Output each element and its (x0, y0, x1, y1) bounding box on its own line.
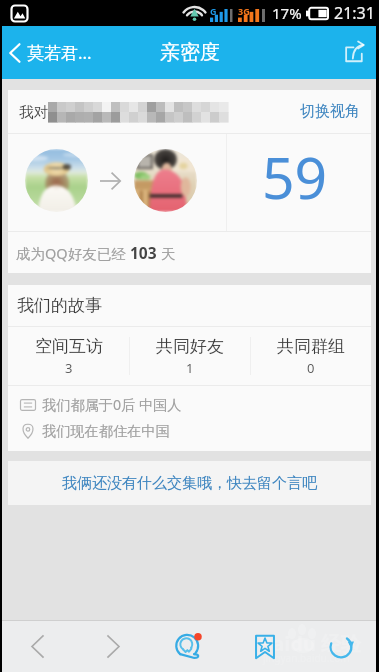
staticText: 亲密度 (160, 40, 220, 65)
staticText: 切换视角 (300, 102, 360, 121)
button[interactable]: 切换视角 (300, 102, 371, 121)
button[interactable]: Share (328, 26, 379, 79)
staticText: 我俩还没有什么交集哦，快去留个言吧 (62, 474, 317, 493)
staticText: 共同好友 (156, 336, 224, 357)
staticText: 21:31 (334, 2, 375, 24)
staticText: 空间互访 (35, 336, 103, 357)
staticText: 3G (238, 5, 250, 17)
button[interactable]: Forward (75, 621, 151, 672)
staticText: 103 (130, 242, 157, 263)
staticText: 我对 (19, 103, 48, 121)
button[interactable]: 莫若君... (0, 26, 104, 79)
staticText: 59 (262, 138, 328, 216)
staticText: 17% (272, 3, 302, 23)
staticText: 天 (157, 243, 176, 263)
staticText: jingyan.baidu.com (263, 651, 350, 665)
button[interactable]: Bookmarks (227, 621, 303, 672)
staticText: 成为QQ好友已经 (16, 243, 130, 263)
button[interactable]: 空间互访 (8, 327, 129, 385)
staticText: 我们都属于0后 中国人 (42, 395, 182, 414)
button[interactable]: Refresh (303, 621, 379, 672)
staticText: 我们现在都住在中国 (42, 422, 170, 440)
staticText: G (210, 5, 217, 17)
button[interactable]: 我俩还没有什么交集哦，快去留个言吧 (8, 461, 371, 505)
staticText: 0 (307, 359, 315, 377)
staticText: 莫若君... (27, 41, 92, 64)
staticText: 1 (186, 359, 194, 377)
button[interactable]: Back (0, 621, 75, 672)
button[interactable]: 共同群组 (251, 327, 371, 385)
staticText: 3 (65, 359, 73, 377)
staticText: Baidu 经验 (259, 630, 362, 657)
staticText: 我们的故事 (17, 295, 102, 316)
button[interactable]: Browser home (151, 621, 227, 672)
staticText: 共同群组 (277, 336, 345, 357)
button[interactable]: 共同好友 (130, 327, 250, 385)
